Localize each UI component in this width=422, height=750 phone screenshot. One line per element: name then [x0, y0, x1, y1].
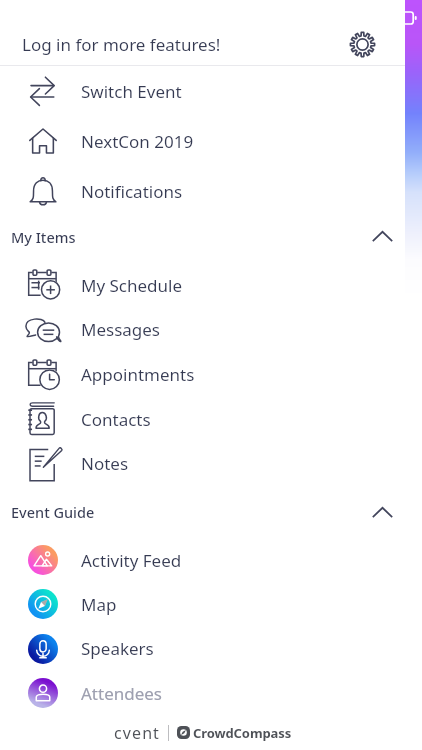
- staticText: Log in for more features!: [22, 33, 344, 56]
- button[interactable]: My Schedule: [0, 263, 405, 307]
- staticText: Attendees: [81, 682, 163, 705]
- staticText: Speakers: [81, 637, 154, 660]
- button[interactable]: Appointments: [0, 352, 405, 397]
- button[interactable]: Contacts: [0, 397, 405, 441]
- staticText: Notes: [81, 452, 129, 475]
- button[interactable]: Messages: [0, 307, 405, 352]
- staticText: Notifications: [81, 180, 183, 203]
- button[interactable]: My Items: [0, 216, 405, 263]
- button[interactable]: Attendees: [0, 671, 405, 715]
- staticText: CrowdCompass: [193, 724, 292, 742]
- button[interactable]: Activity Feed: [0, 538, 405, 582]
- button[interactable]: Speakers: [0, 626, 405, 671]
- staticText: NextCon 2019: [81, 130, 194, 153]
- button[interactable]: Collapse My Items: [355, 216, 405, 263]
- staticText: My Schedule: [81, 274, 183, 297]
- button[interactable]: Notes: [0, 441, 405, 486]
- staticText: cvent: [114, 722, 160, 744]
- button[interactable]: Notifications: [0, 166, 405, 216]
- button[interactable]: Switch Event: [0, 66, 405, 116]
- staticText: Switch Event: [81, 80, 182, 103]
- staticText: My Items: [11, 227, 355, 247]
- staticText: Event Guide: [11, 502, 355, 522]
- button[interactable]: Collapse Event Guide: [355, 486, 405, 538]
- staticText: Appointments: [81, 363, 195, 386]
- button[interactable]: Log in for more features!: [0, 23, 405, 65]
- button[interactable]: Event Guide: [0, 486, 405, 538]
- staticText: Messages: [81, 318, 161, 341]
- button[interactable]: Settings: [344, 23, 405, 65]
- staticText: Contacts: [81, 408, 151, 431]
- staticText: Activity Feed: [81, 549, 182, 572]
- button[interactable]: NextCon 2019: [0, 116, 405, 166]
- staticText: Map: [81, 593, 117, 616]
- button[interactable]: Map: [0, 582, 405, 626]
- other: Battery: [396, 12, 416, 24]
